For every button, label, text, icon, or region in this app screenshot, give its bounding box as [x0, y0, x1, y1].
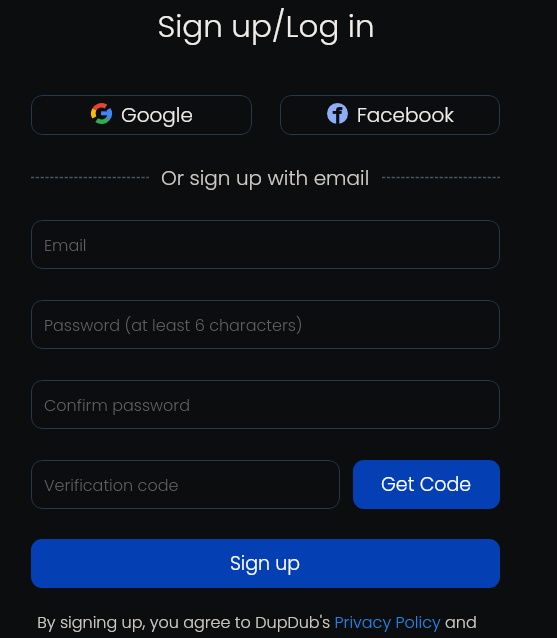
button[interactable]: Email: [31, 220, 500, 269]
staticText: Facebook: [357, 101, 454, 129]
staticText: Email: [44, 234, 87, 256]
button[interactable]: Password (at least 6 characters): [31, 300, 500, 349]
staticText: Verification code: [44, 474, 179, 496]
staticText: By signing up, you agree to DupDub's Pri…: [37, 611, 477, 633]
staticText: Get Code: [381, 471, 472, 498]
button[interactable]: Sign up: [31, 539, 500, 588]
button[interactable]: Verification code: [31, 460, 340, 509]
staticText: Sign up/Log in: [157, 4, 375, 47]
button[interactable]: Get Code: [353, 460, 500, 509]
staticText: Sign up: [230, 550, 301, 577]
button[interactable]: Google: [31, 95, 252, 135]
staticText: Or sign up with email: [161, 164, 370, 192]
staticText: Password (at least 6 characters): [44, 314, 303, 336]
staticText: Google: [121, 101, 193, 129]
staticText: Confirm password: [44, 394, 190, 416]
button[interactable]: Confirm password: [31, 380, 500, 429]
button[interactable]: Facebook: [280, 95, 500, 135]
